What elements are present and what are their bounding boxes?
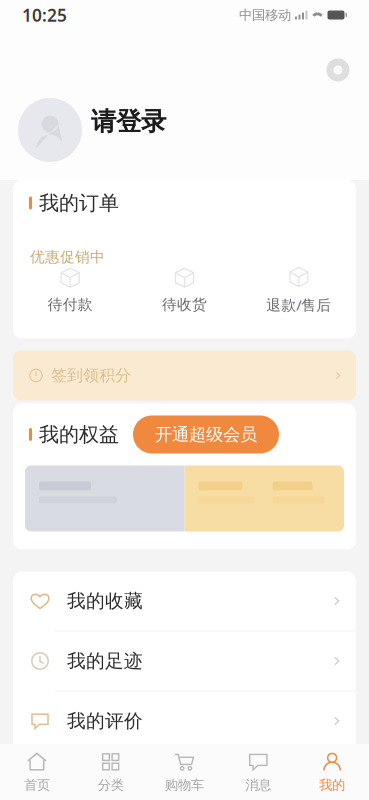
staticText: 我的订单 [39, 191, 119, 215]
button[interactable]: 退款/售后 [242, 266, 356, 314]
staticText: 中国移动 [239, 7, 291, 23]
button[interactable]: 我的足迹 [13, 631, 356, 690]
staticText: 我的足迹 [67, 649, 143, 672]
staticText: 待收货 [162, 296, 207, 314]
staticText: 待付款 [48, 296, 93, 314]
button[interactable]: 签到领积分 [13, 350, 356, 400]
button[interactable]: 购物车 [148, 744, 221, 800]
button[interactable]: 开通超级会员 [133, 415, 279, 453]
staticText: 我的 [319, 777, 345, 793]
staticText: 消息 [245, 777, 271, 793]
staticText: 分类 [98, 777, 124, 793]
button[interactable]: 待付款 [13, 267, 127, 314]
button[interactable]: 头像 [18, 98, 82, 162]
button[interactable]: 我的收藏 [13, 571, 356, 630]
staticText: 优惠促销中 [30, 248, 105, 266]
staticText: 购物车 [165, 777, 204, 793]
staticText: 我的评价 [67, 709, 143, 732]
button[interactable]: 我的评价 [13, 691, 356, 750]
staticText: 开通超级会员 [155, 424, 257, 445]
staticText: 我的收藏 [67, 589, 143, 612]
button[interactable]: 我的 [295, 744, 369, 800]
staticText: 10:25 [22, 3, 67, 26]
button[interactable]: 分类 [74, 744, 148, 800]
staticText: 请登录 [91, 106, 166, 137]
button[interactable]: 优惠促销中 [13, 226, 356, 266]
button[interactable]: 设置 [316, 48, 360, 92]
button[interactable]: 首页 [0, 744, 74, 800]
staticText: 退款/售后 [266, 295, 331, 314]
button[interactable]: 请登录 [82, 106, 166, 154]
staticText: 我的权益 [39, 422, 119, 447]
button[interactable]: 待收货 [127, 267, 242, 314]
staticText: 签到领积分 [51, 366, 131, 385]
staticText: 首页 [24, 777, 50, 793]
button[interactable]: 消息 [221, 744, 295, 800]
